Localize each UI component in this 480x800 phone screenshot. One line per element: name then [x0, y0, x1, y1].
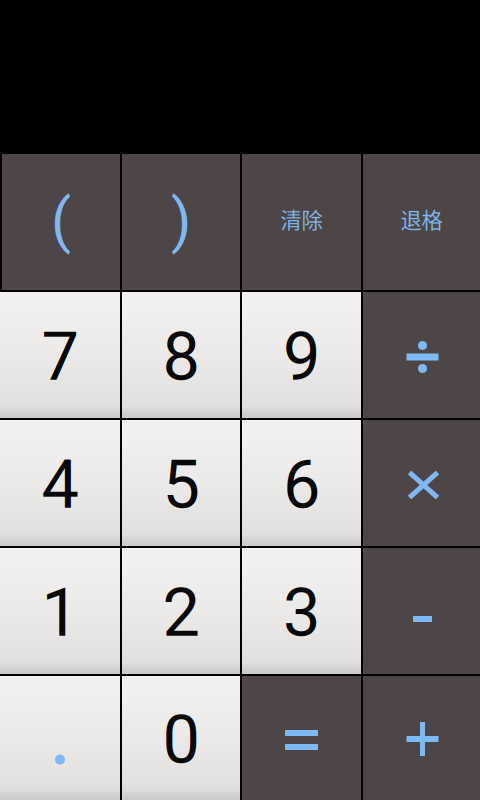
button[interactable]: Plus	[363, 676, 480, 800]
staticText: 4	[41, 446, 78, 524]
button[interactable]	[242, 420, 361, 546]
button[interactable]: Open parenthesis	[2, 154, 120, 290]
button[interactable]: Close parenthesis	[122, 154, 240, 290]
button[interactable]	[0, 292, 120, 418]
button[interactable]: Decimal point	[0, 676, 120, 800]
button[interactable]	[242, 548, 361, 674]
staticText: 退格	[400, 204, 442, 234]
staticText: 2	[162, 574, 199, 652]
button[interactable]	[122, 420, 240, 546]
staticText: 0	[162, 701, 199, 779]
button[interactable]	[122, 548, 240, 674]
staticText: 9	[283, 318, 320, 396]
staticText: 7	[41, 318, 78, 396]
button[interactable]: Multiply	[363, 420, 480, 546]
staticText: (	[51, 187, 71, 255]
staticText: 3	[283, 574, 320, 652]
staticText: 清除	[280, 204, 322, 234]
button[interactable]	[0, 420, 120, 546]
staticText: 6	[283, 446, 320, 524]
button[interactable]: Minus	[363, 548, 480, 674]
button[interactable]	[242, 292, 361, 418]
staticText: )	[171, 187, 191, 255]
button[interactable]	[122, 292, 240, 418]
staticText: 1	[41, 574, 78, 652]
button[interactable]: Equals	[242, 676, 361, 800]
staticText: 8	[162, 318, 199, 396]
button[interactable]	[242, 154, 361, 290]
button[interactable]	[122, 676, 240, 800]
staticText: 5	[162, 446, 199, 524]
button[interactable]: Divide	[363, 292, 480, 418]
button[interactable]	[363, 154, 480, 290]
button[interactable]	[0, 548, 120, 674]
